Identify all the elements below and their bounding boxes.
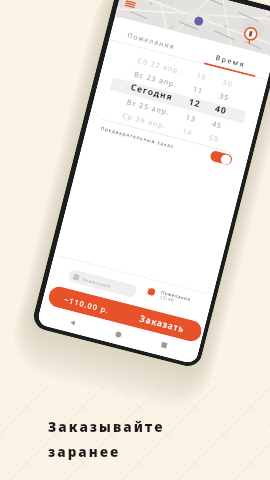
- staticText: 10: [196, 71, 209, 82]
- staticText: Заказывайте: [48, 417, 165, 436]
- button[interactable]: Время: [188, 43, 270, 79]
- staticText: 14: [182, 126, 194, 138]
- button[interactable]: Preorder toggle: [209, 150, 233, 166]
- staticText: 13: [185, 113, 198, 124]
- staticText: 12: [188, 96, 202, 110]
- staticText: 50: [208, 133, 221, 144]
- staticText: Пожелание: [160, 289, 192, 302]
- staticText: Вт 25 апр.: [126, 97, 172, 117]
- staticText: 35: [218, 91, 231, 103]
- button[interactable]: Пожелание: [142, 283, 210, 315]
- staticText: Сегодня: [129, 81, 175, 104]
- button[interactable]: Home: [115, 331, 122, 338]
- button[interactable]: Menu: [125, 0, 137, 8]
- staticText: Время: [215, 53, 247, 69]
- staticText: Сб 22 апр.: [137, 56, 182, 76]
- staticText: 12:40: [159, 294, 175, 303]
- staticText: 40: [214, 103, 228, 117]
- button[interactable]: Пожелания: [67, 268, 138, 298]
- button[interactable]: Recents: [160, 341, 168, 349]
- staticText: Предварительный заказ: [100, 125, 175, 149]
- staticText: Пожелания: [126, 31, 176, 51]
- staticText: ~110.00 р.: [63, 294, 111, 315]
- staticText: Ср 26 апр.: [121, 111, 168, 131]
- button[interactable]: Пожелания: [109, 22, 193, 59]
- staticText: 45: [211, 119, 224, 131]
- staticText: 30: [222, 78, 235, 89]
- staticText: Заказать: [139, 312, 186, 335]
- staticText: 11: [192, 84, 205, 96]
- staticText: Пожелания: [81, 276, 112, 289]
- button[interactable]: ~110.00 р.: [46, 284, 204, 343]
- staticText: Вс 23 апр.: [133, 69, 179, 89]
- staticText: заранее: [48, 442, 121, 461]
- button[interactable]: Back: [69, 319, 76, 326]
